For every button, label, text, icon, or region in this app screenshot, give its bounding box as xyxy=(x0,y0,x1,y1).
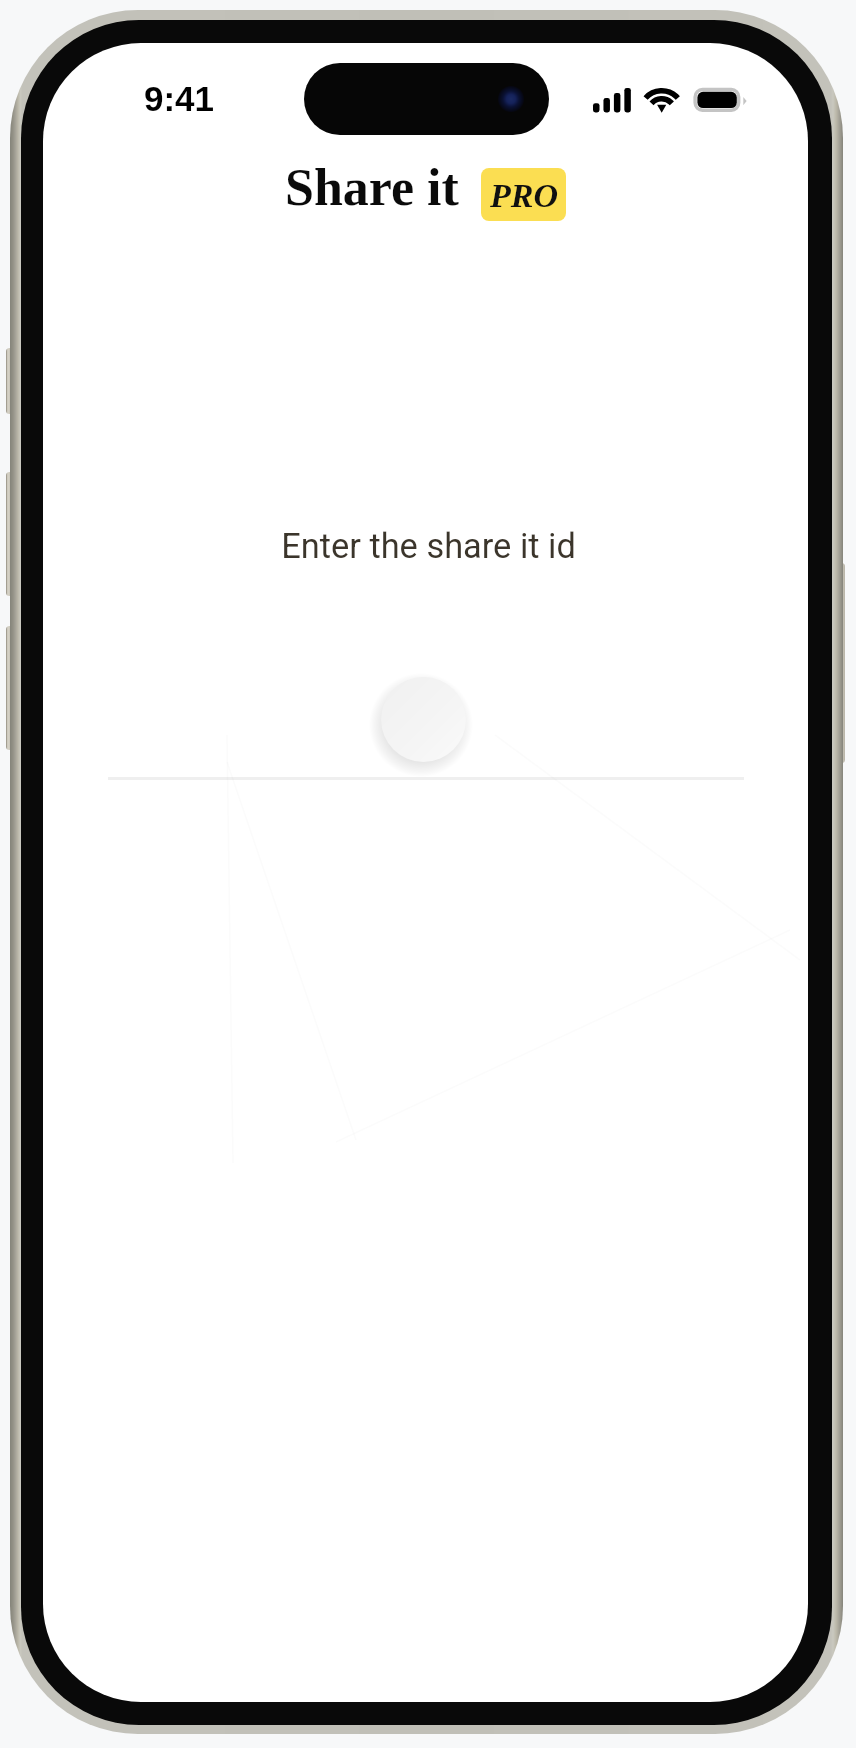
button[interactable]: Pro xyxy=(481,168,566,221)
staticText: Enter the share it id xyxy=(46,526,808,566)
staticText: PRO xyxy=(490,177,558,215)
button[interactable]: Share it id input xyxy=(381,677,466,762)
staticText: 9:41 xyxy=(144,79,215,118)
staticText: Share it xyxy=(285,159,459,217)
